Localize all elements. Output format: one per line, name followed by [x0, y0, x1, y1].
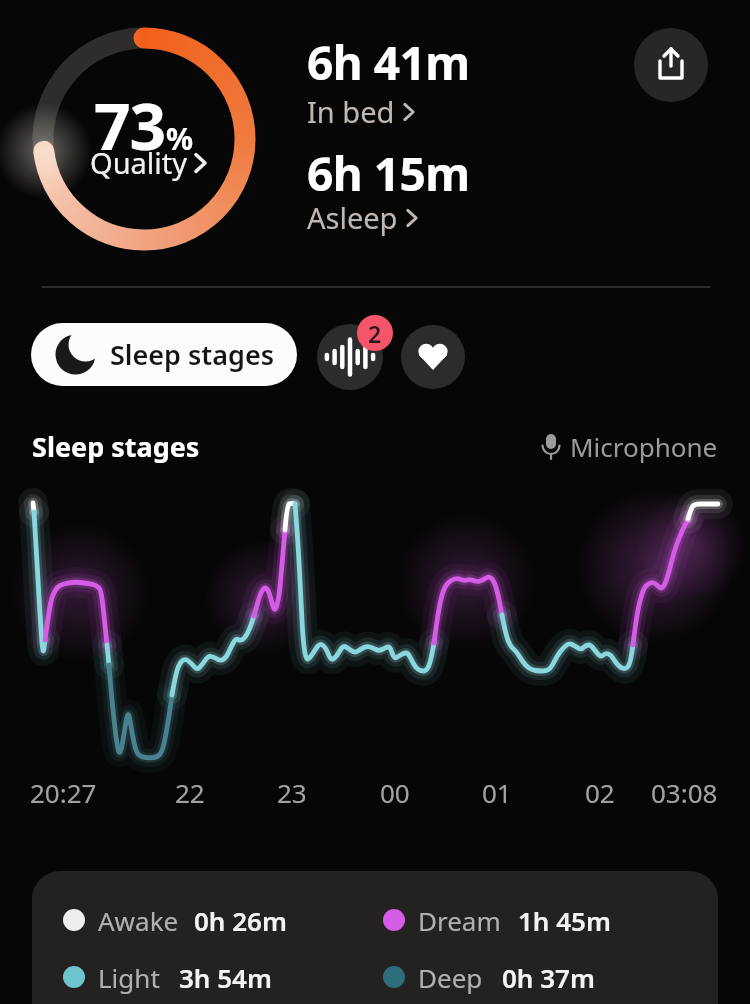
- staticText: 0h 26m: [194, 903, 287, 938]
- staticText: 22: [175, 775, 205, 809]
- staticText: Quality: [90, 143, 188, 182]
- staticText: Sleep stages: [32, 428, 200, 465]
- staticText: 1h 45m: [518, 903, 611, 938]
- staticText: 6h 15m: [307, 142, 470, 205]
- staticText: 03:08: [651, 775, 718, 809]
- staticText: 3h 54m: [179, 960, 272, 995]
- staticText: Dream: [418, 903, 501, 938]
- staticText: 20:27: [30, 775, 97, 809]
- button[interactable]: [634, 28, 708, 102]
- button[interactable]: In bed: [307, 92, 415, 131]
- staticText: 2: [368, 318, 382, 349]
- staticText: 6h 41m: [307, 31, 470, 94]
- staticText: 02: [585, 775, 615, 809]
- button[interactable]: Asleep: [307, 198, 418, 237]
- staticText: Deep: [418, 960, 483, 995]
- staticText: 00: [380, 775, 410, 809]
- staticText: Light: [98, 960, 160, 995]
- button[interactable]: Microphone: [540, 429, 718, 464]
- button[interactable]: Sleep stages: [31, 323, 297, 386]
- staticText: 0h 37m: [502, 960, 595, 995]
- staticText: In bed: [307, 92, 395, 131]
- staticText: Awake: [98, 903, 179, 938]
- button[interactable]: [401, 325, 465, 389]
- button[interactable]: Awake: [32, 871, 718, 1004]
- staticText: 73: [94, 82, 166, 169]
- staticText: Microphone: [570, 429, 718, 464]
- staticText: 01: [482, 775, 512, 809]
- staticText: Sleep stages: [110, 336, 275, 373]
- staticText: 23: [277, 775, 307, 809]
- button[interactable]: 73: [32, 27, 256, 251]
- button[interactable]: [317, 324, 383, 390]
- staticText: %: [166, 118, 194, 159]
- staticText: Asleep: [307, 198, 398, 237]
